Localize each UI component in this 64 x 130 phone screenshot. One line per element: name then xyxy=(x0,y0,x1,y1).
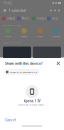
button[interactable]: Music xyxy=(17,17,32,20)
staticText: Device not visible? Check... xyxy=(17,103,46,106)
button[interactable]: Videos xyxy=(32,17,47,20)
button[interactable]: Gmail xyxy=(32,28,48,38)
staticText: Drive xyxy=(5,35,11,38)
staticText: Photos xyxy=(21,35,27,38)
button[interactable]: Images xyxy=(2,17,17,20)
button[interactable]: Cancel xyxy=(0,116,21,124)
staticText: Cancel xyxy=(5,118,16,122)
staticText: Music xyxy=(22,17,29,20)
staticText: Docs xyxy=(52,17,58,20)
staticText: Xperia 1 IV xyxy=(23,99,40,103)
button[interactable]: Xperia 1 IV xyxy=(0,85,64,106)
staticText: Videos xyxy=(37,17,46,20)
button[interactable]: Chrome xyxy=(48,28,64,38)
button[interactable]: Docs xyxy=(47,17,62,20)
staticText: Share with this device? xyxy=(5,61,43,66)
staticText: 10:42 xyxy=(3,1,12,5)
staticText: SHARE TO APPS xyxy=(3,23,20,27)
staticText: 1 selected xyxy=(9,8,26,13)
staticText: Chrome xyxy=(52,35,60,38)
button[interactable]: Drive xyxy=(0,28,16,38)
button[interactable]: Photos xyxy=(16,28,32,38)
staticText: Gmail xyxy=(36,35,43,38)
staticText: Screenshot_20241008.png xyxy=(10,70,38,74)
staticText: SELECT AN APP xyxy=(3,41,20,44)
staticText: Images xyxy=(7,17,15,20)
button[interactable]: Close xyxy=(57,62,60,65)
